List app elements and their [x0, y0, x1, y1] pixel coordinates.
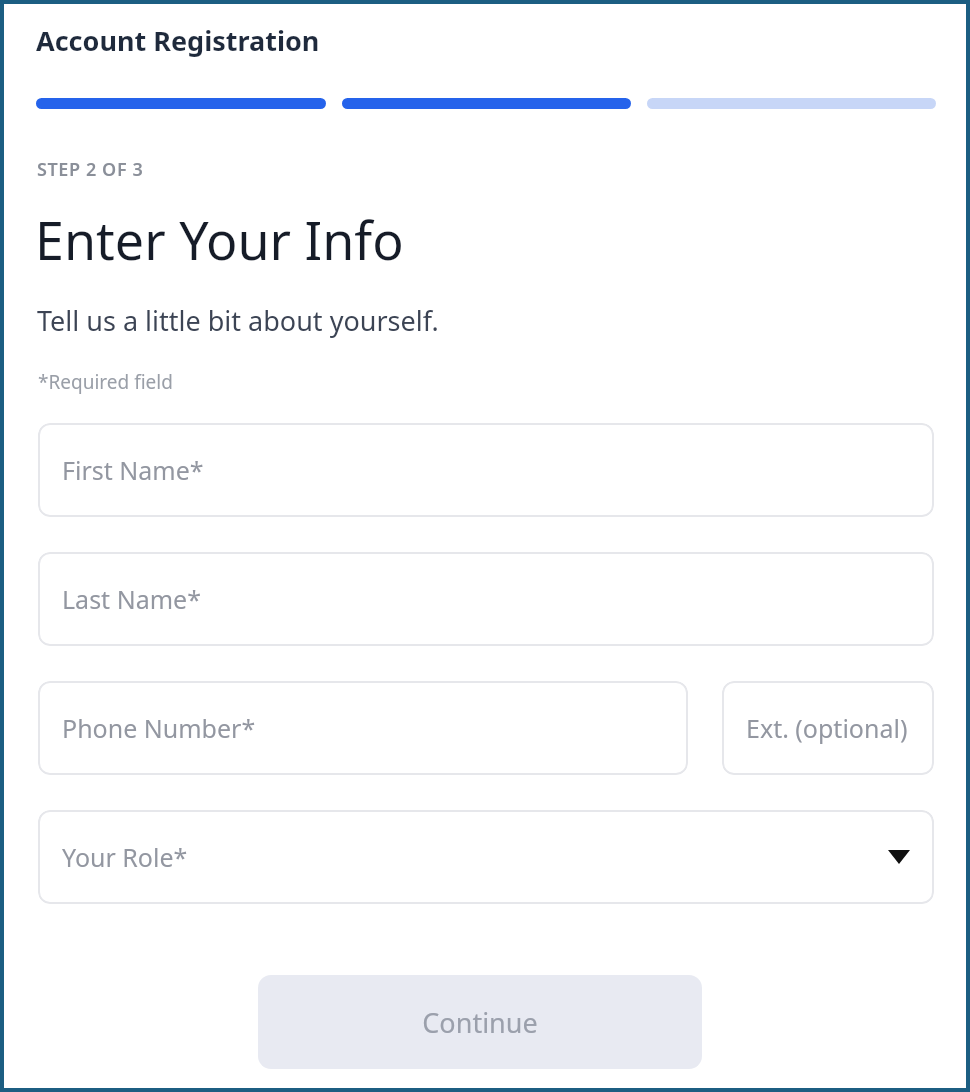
staticText: Phone Number* [62, 711, 256, 745]
staticText: Your Role* [62, 840, 188, 874]
staticText: First Name* [62, 453, 204, 487]
staticText: STEP 2 OF 3 [37, 157, 144, 182]
button[interactable]: Ext. (optional) [722, 681, 934, 775]
staticText: Tell us a little bit about yourself. [37, 302, 439, 339]
staticText: Ext. (optional) [746, 711, 908, 745]
button[interactable]: Last Name* [38, 552, 934, 646]
staticText: Last Name* [62, 582, 201, 616]
button[interactable]: Phone Number* [38, 681, 688, 775]
button[interactable]: Your Role* [38, 810, 934, 904]
staticText: *Required field [38, 369, 173, 395]
button[interactable]: Continue [258, 975, 702, 1069]
staticText: Continue [422, 1004, 538, 1041]
button[interactable]: First Name* [38, 423, 934, 517]
staticText: Account Registration [36, 22, 320, 59]
staticText: Enter Your Info [35, 204, 404, 275]
